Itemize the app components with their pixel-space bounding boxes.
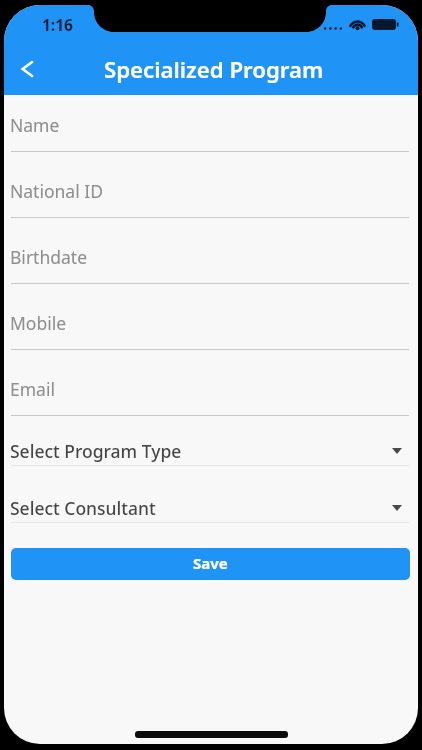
staticText: Mobile xyxy=(10,311,67,335)
button[interactable]: Email xyxy=(4,350,418,416)
staticText: Specialized Program xyxy=(104,54,324,84)
button[interactable]: Select Program Type xyxy=(4,416,418,466)
button[interactable]: National ID xyxy=(4,152,418,218)
staticText: 1:16 xyxy=(42,14,73,35)
button[interactable]: Back xyxy=(5,47,49,91)
staticText: Birthdate xyxy=(10,245,88,269)
button[interactable]: Save xyxy=(11,548,410,580)
button[interactable]: Mobile xyxy=(4,284,418,350)
staticText: Save xyxy=(193,553,228,573)
button[interactable]: Birthdate xyxy=(4,218,418,284)
staticText: National ID xyxy=(10,179,103,203)
staticText: Select Consultant xyxy=(10,496,156,520)
staticText: Select Program Type xyxy=(10,439,182,463)
staticText: Email xyxy=(10,377,55,401)
staticText: Name xyxy=(10,113,60,137)
button[interactable]: Select Consultant xyxy=(4,466,418,523)
button[interactable]: Name xyxy=(4,95,418,152)
